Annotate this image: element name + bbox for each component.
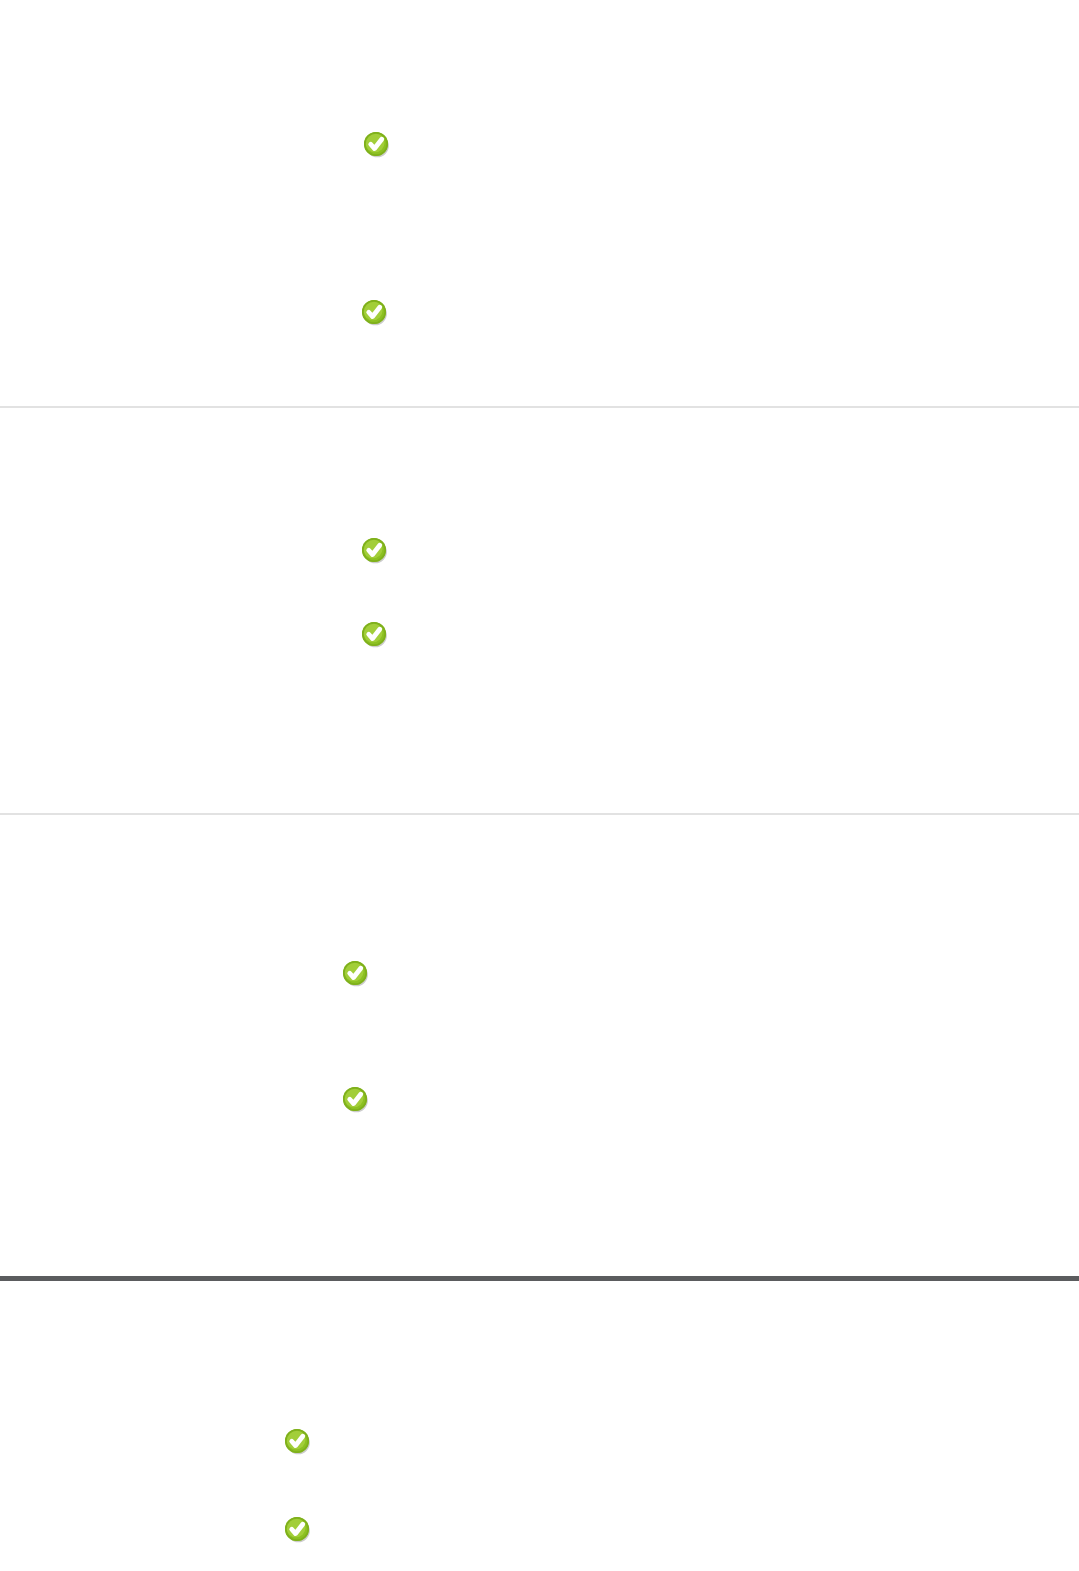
button[interactable]: Item approved	[285, 1429, 309, 1453]
button[interactable]: Item approved	[343, 961, 367, 985]
button[interactable]: Item approved	[362, 300, 386, 324]
button[interactable]: Item approved	[362, 538, 386, 562]
button[interactable]: Item approved	[362, 622, 386, 646]
button[interactable]: Item approved	[364, 132, 388, 156]
button[interactable]: Item approved	[285, 1517, 309, 1541]
button[interactable]: Item approved	[343, 1087, 367, 1111]
